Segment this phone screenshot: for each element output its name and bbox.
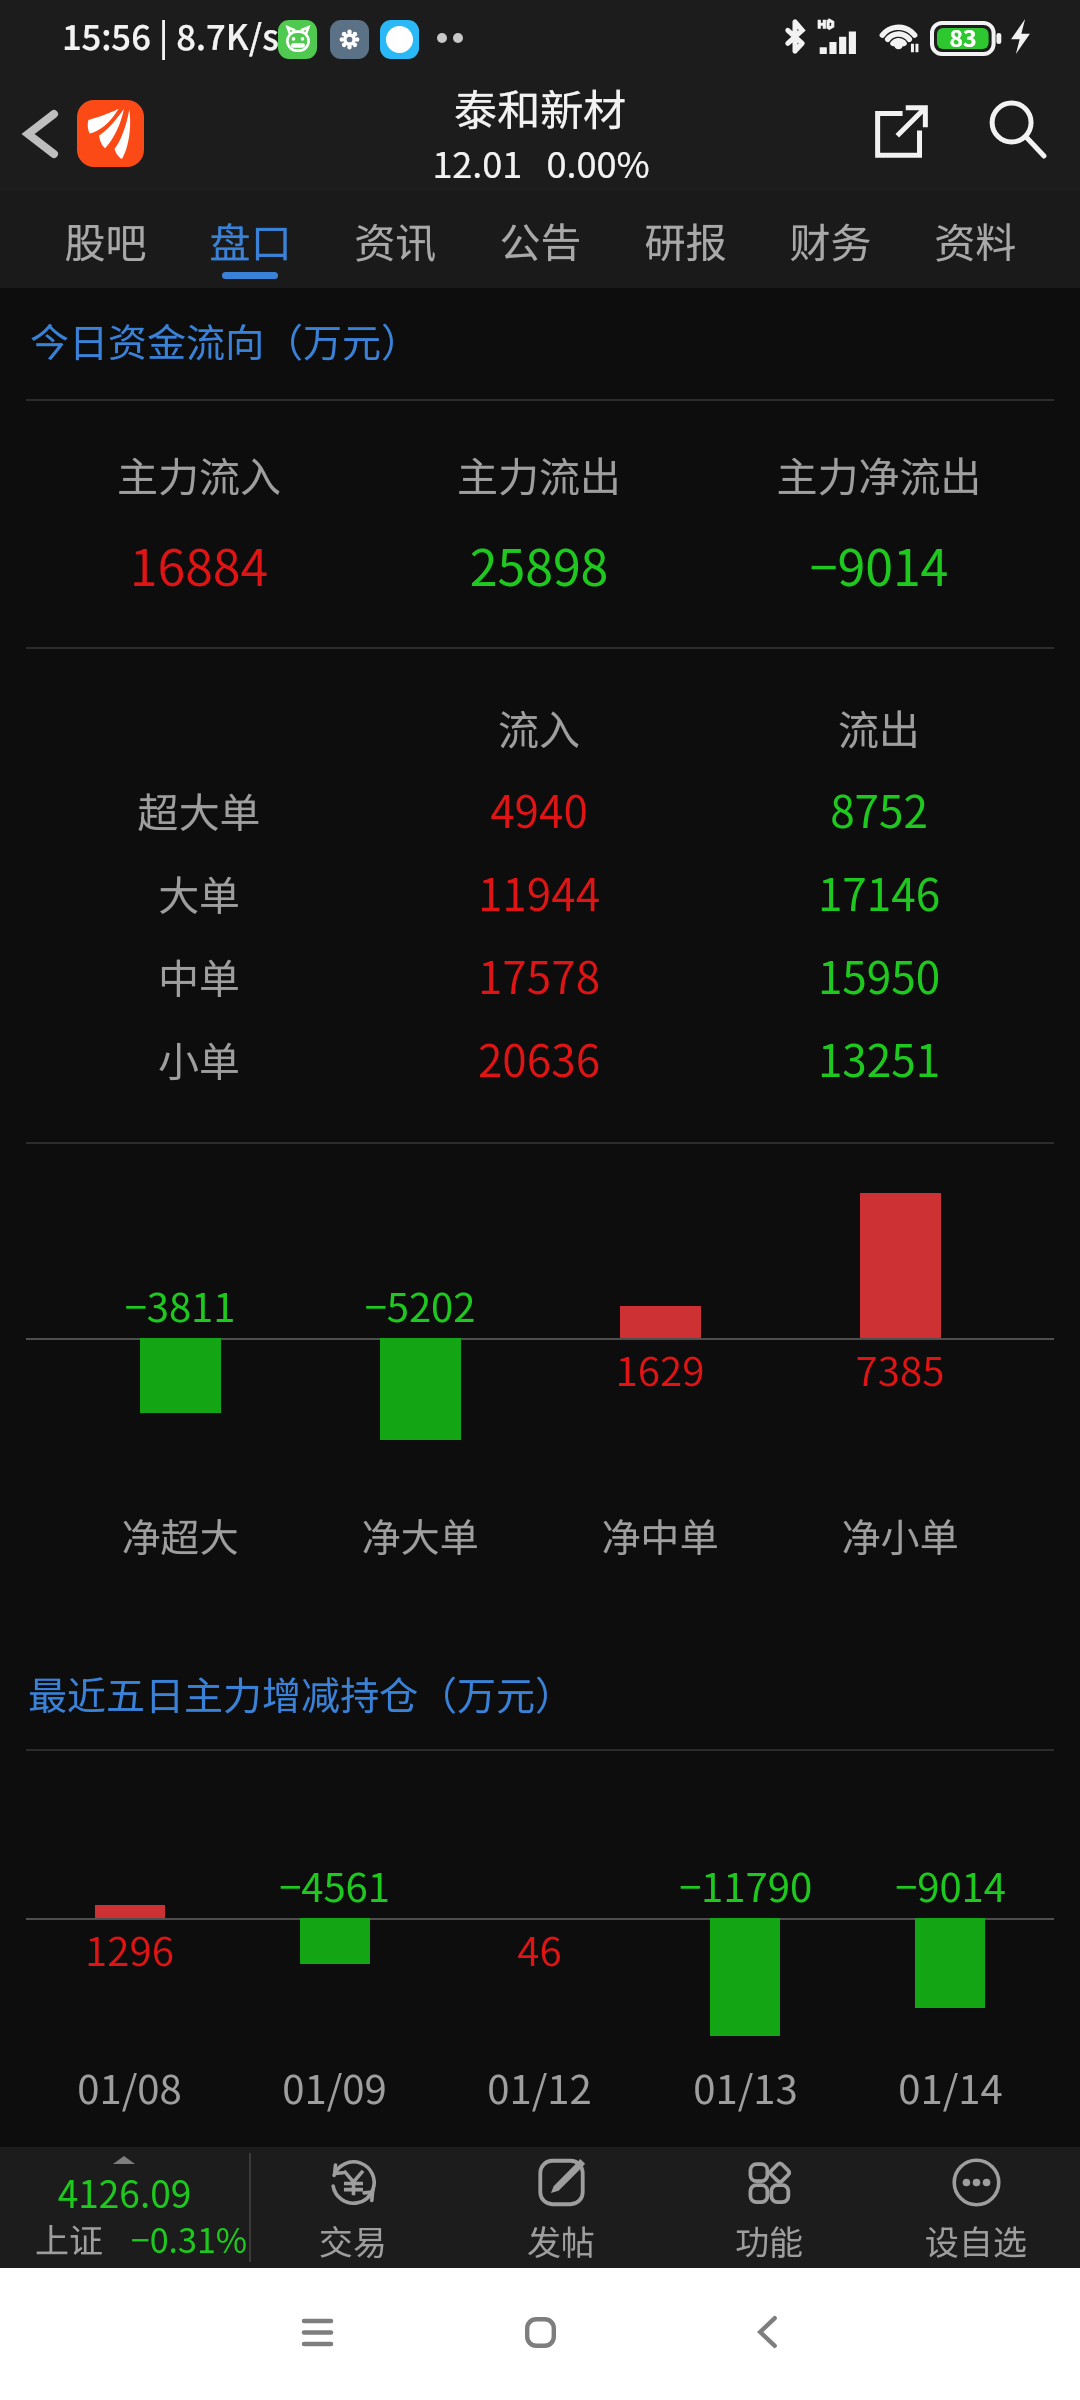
staticText: 最近五日主力增减持仓（万元） bbox=[28, 1665, 575, 1721]
staticText: 11944 bbox=[369, 860, 709, 924]
staticText: 83 bbox=[949, 20, 977, 53]
staticText: 7385 bbox=[780, 1340, 1020, 1398]
staticText: −3811 bbox=[60, 1276, 300, 1334]
button[interactable] bbox=[249, 2147, 457, 2268]
button[interactable] bbox=[665, 2147, 873, 2268]
staticText: 设自选 bbox=[872, 2216, 1080, 2265]
button[interactable]: Back bbox=[6, 99, 76, 169]
button[interactable] bbox=[872, 2147, 1080, 2268]
staticText: 今日资金流向（万元） bbox=[30, 312, 421, 368]
button[interactable] bbox=[772, 191, 926, 288]
staticText: 净大单 bbox=[300, 1507, 540, 1563]
staticText: 中单 bbox=[29, 946, 369, 1005]
button[interactable]: Home bbox=[77, 100, 144, 167]
staticText: 主力净流出 bbox=[709, 444, 1049, 503]
staticText: 流入 bbox=[369, 697, 709, 756]
staticText: −9014 bbox=[848, 1856, 1053, 1914]
button[interactable]: Share bbox=[856, 76, 946, 191]
staticText: 发帖 bbox=[457, 2216, 665, 2265]
staticText: 4940 bbox=[369, 777, 709, 841]
staticText: 25898 bbox=[369, 528, 709, 600]
staticText: 研报 bbox=[613, 210, 758, 269]
staticText: 资料 bbox=[903, 210, 1048, 269]
staticText: 15:56 | 8.7K/s bbox=[62, 10, 279, 60]
staticText: 17578 bbox=[369, 943, 709, 1007]
button[interactable] bbox=[0, 191, 155, 288]
button[interactable] bbox=[457, 2147, 665, 2268]
staticText: 01/09 bbox=[232, 2058, 437, 2116]
staticText: 上证 bbox=[9, 2214, 129, 2263]
staticText: 01/13 bbox=[643, 2058, 848, 2116]
button[interactable] bbox=[310, 191, 464, 288]
staticText: 主力流出 bbox=[369, 444, 709, 503]
staticText: −9014 bbox=[709, 528, 1049, 600]
staticText: −5202 bbox=[300, 1276, 540, 1334]
button[interactable] bbox=[464, 191, 618, 288]
staticText: 大单 bbox=[29, 863, 369, 922]
button[interactable]: Back bbox=[702, 2267, 832, 2397]
staticText: 盘口 bbox=[178, 210, 323, 269]
button[interactable] bbox=[155, 191, 310, 288]
staticText: 01/14 bbox=[848, 2058, 1053, 2116]
button[interactable] bbox=[0, 2147, 249, 2268]
staticText: 1296 bbox=[27, 1920, 232, 1978]
staticText: 公告 bbox=[468, 210, 613, 269]
staticText: 01/12 bbox=[437, 2058, 642, 2116]
staticText: 16884 bbox=[29, 528, 369, 600]
staticText: 财务 bbox=[758, 210, 903, 269]
staticText: 17146 bbox=[709, 860, 1049, 924]
button[interactable]: Recents bbox=[252, 2267, 382, 2397]
staticText: 15950 bbox=[709, 943, 1049, 1007]
staticText: 流出 bbox=[709, 697, 1049, 756]
staticText: 净超大 bbox=[60, 1507, 300, 1563]
button[interactable]: Search bbox=[972, 76, 1062, 191]
staticText: 12.01 0.00% bbox=[191, 136, 891, 188]
staticText: 股吧 bbox=[33, 210, 178, 269]
button[interactable]: Home bbox=[475, 2267, 605, 2397]
staticText: 资讯 bbox=[323, 210, 468, 269]
staticText: 交易 bbox=[249, 2216, 457, 2265]
staticText: 46 bbox=[437, 1920, 642, 1978]
staticText: 主力流入 bbox=[29, 444, 369, 503]
staticText: 超大单 bbox=[29, 780, 369, 839]
staticText: −4561 bbox=[232, 1856, 437, 1914]
staticText: 功能 bbox=[665, 2216, 873, 2265]
button[interactable] bbox=[926, 191, 1080, 288]
staticText: 1629 bbox=[540, 1340, 780, 1398]
staticText: 小单 bbox=[29, 1029, 369, 1088]
staticText: 泰和新材 bbox=[190, 76, 890, 138]
staticText: −0.31% bbox=[109, 2214, 269, 2263]
staticText: 净中单 bbox=[540, 1507, 780, 1563]
staticText: −11790 bbox=[643, 1856, 848, 1914]
staticText: 20636 bbox=[369, 1026, 709, 1090]
staticText: 01/08 bbox=[27, 2058, 232, 2116]
staticText: 净小单 bbox=[780, 1507, 1020, 1563]
button[interactable] bbox=[618, 191, 772, 288]
staticText: 8752 bbox=[709, 777, 1049, 841]
staticText: 13251 bbox=[709, 1026, 1049, 1090]
staticText: 4126.09 bbox=[0, 2165, 249, 2219]
